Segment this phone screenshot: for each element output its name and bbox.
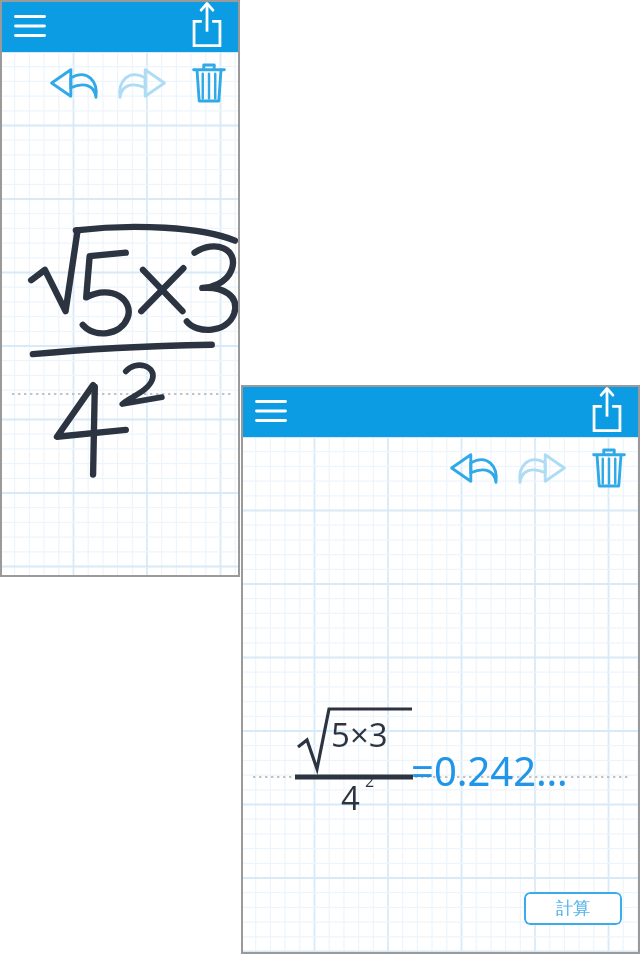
button[interactable]: 計算 xyxy=(524,892,622,925)
button[interactable]: Redo xyxy=(520,447,564,491)
staticText: 2 xyxy=(365,770,375,792)
staticText: 4 xyxy=(341,775,360,820)
button[interactable]: Undo xyxy=(452,447,496,491)
staticText: 5×3 xyxy=(331,712,388,757)
button[interactable]: Menu xyxy=(253,397,291,435)
button[interactable]: Undo xyxy=(52,62,96,106)
button[interactable]: Share xyxy=(188,8,232,52)
button[interactable]: Menu xyxy=(12,12,50,50)
staticText: =0.242… xyxy=(411,743,568,797)
button[interactable]: Share xyxy=(588,393,632,437)
button[interactable]: Redo xyxy=(120,62,164,106)
button[interactable]: Delete xyxy=(186,60,230,104)
staticText: 計算 xyxy=(556,898,590,919)
button[interactable]: Delete xyxy=(586,445,630,489)
